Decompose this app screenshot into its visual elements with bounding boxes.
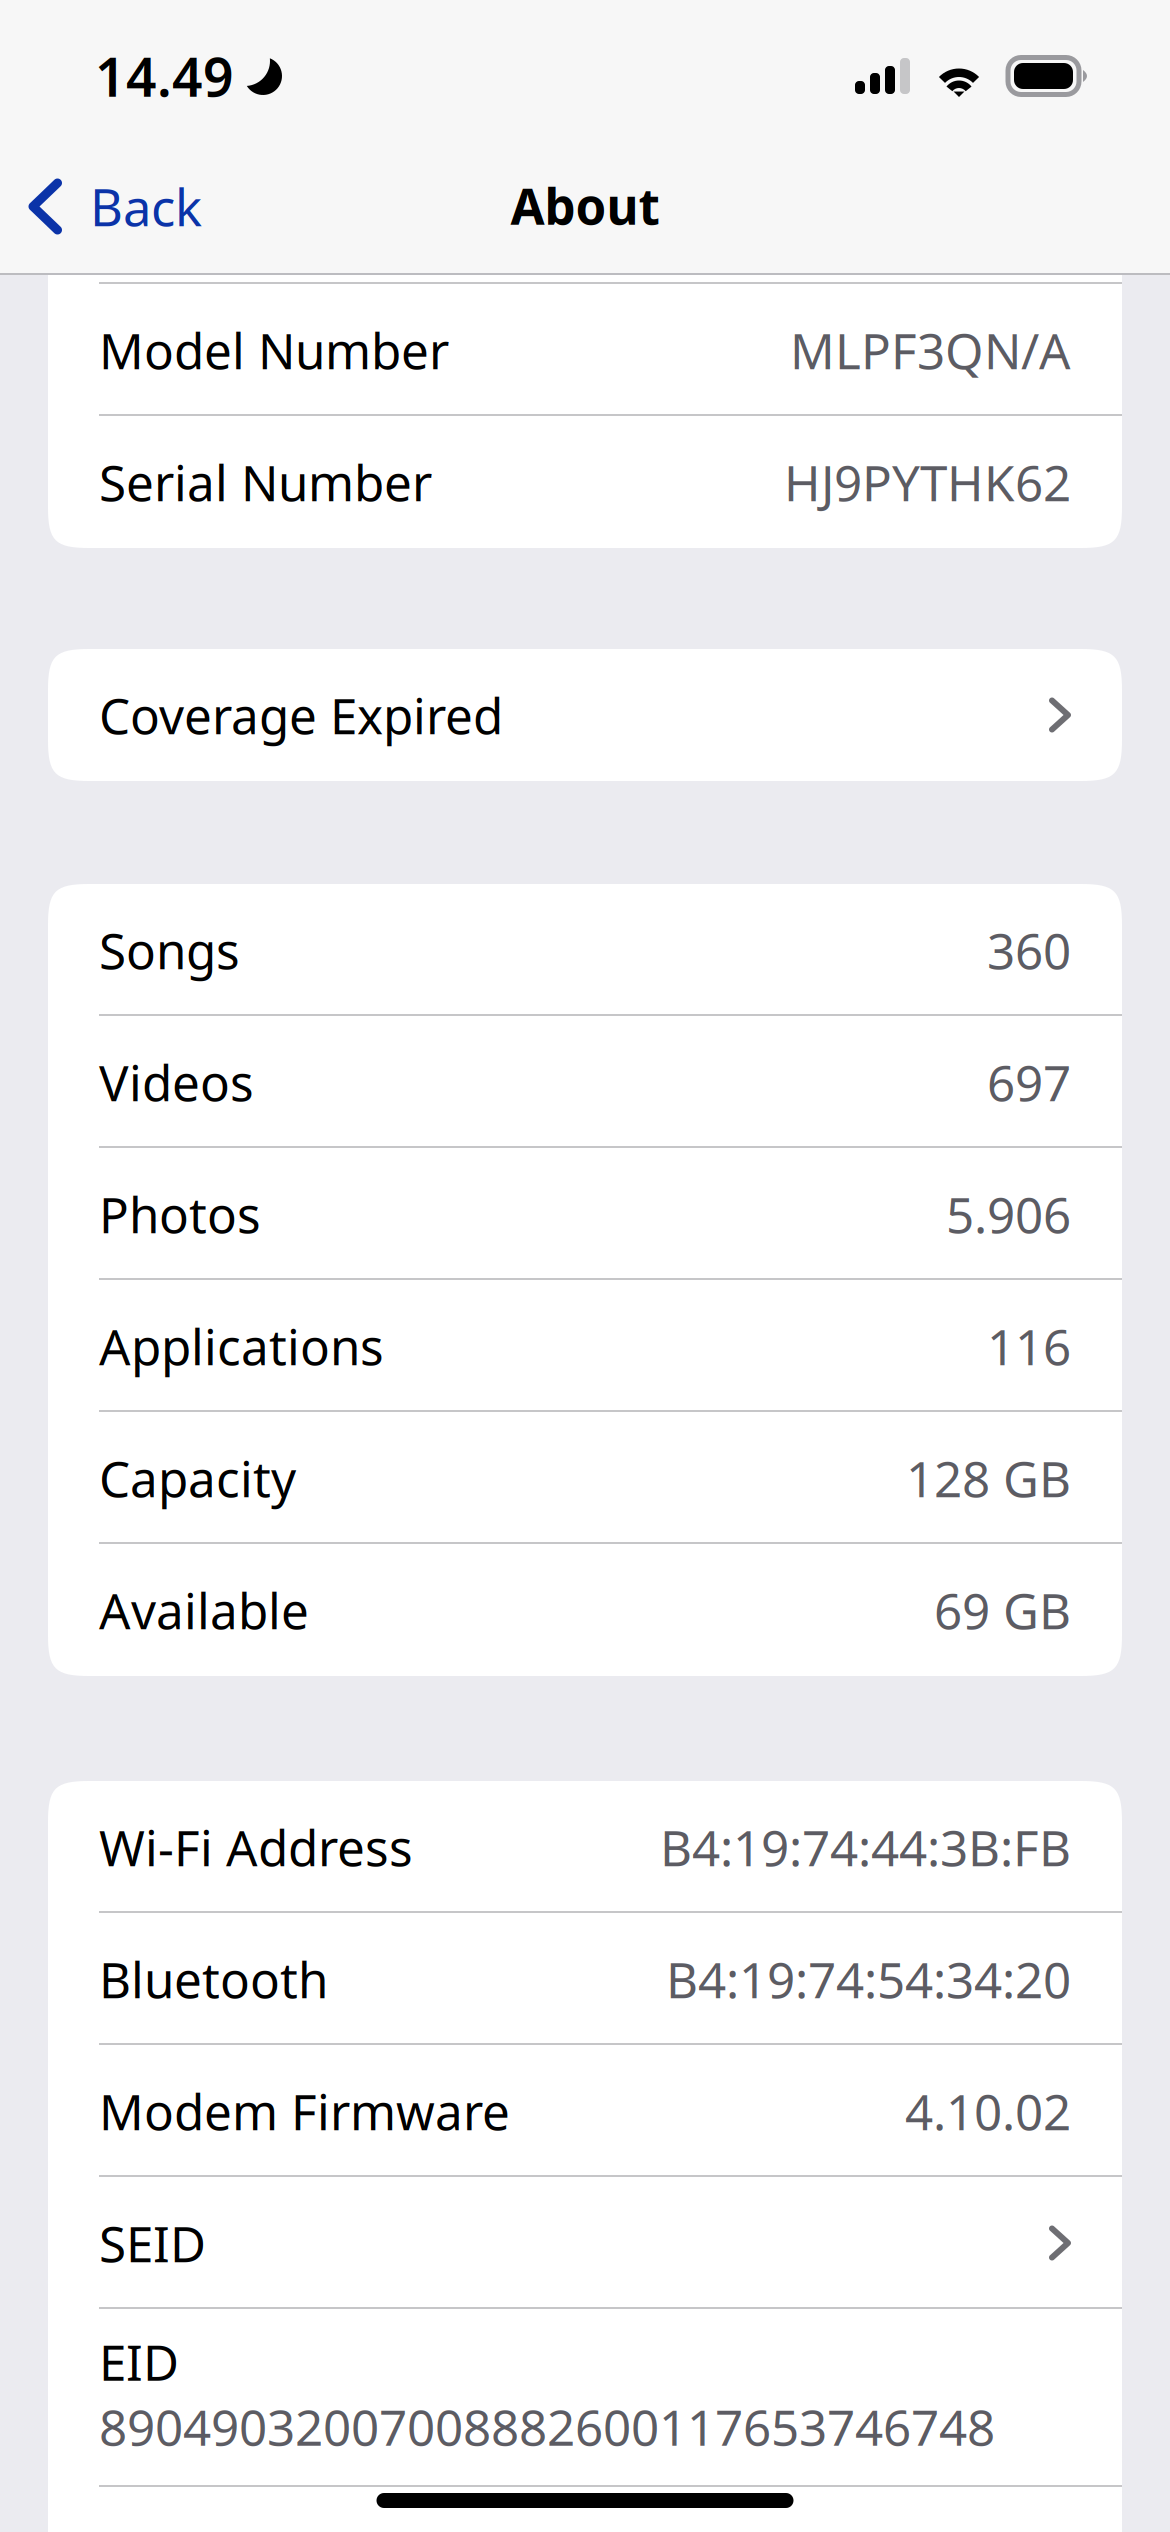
staticText: 116 — [987, 1313, 1071, 1379]
staticText: Available — [99, 1577, 309, 1643]
button[interactable]: SEID — [48, 2177, 1122, 2309]
staticText: B4:19:74:44:3B:FB — [660, 1814, 1071, 1880]
staticText: 4.10.02 — [905, 2078, 1071, 2144]
staticText: Songs — [99, 917, 240, 983]
button[interactable]: Applications — [48, 1280, 1122, 1412]
staticText: Capacity — [99, 1445, 296, 1511]
staticText: 14.49 — [95, 41, 234, 111]
staticText: B4:19:74:54:34:20 — [666, 1946, 1071, 2012]
staticText: Applications — [99, 1313, 384, 1379]
staticText: Videos — [99, 1049, 254, 1115]
staticText: 69 GB — [934, 1577, 1071, 1643]
button[interactable]: Available — [48, 1544, 1122, 1676]
button[interactable]: Capacity — [48, 1412, 1122, 1544]
button[interactable]: Songs — [48, 884, 1122, 1016]
button[interactable]: Modem Firmware — [48, 2045, 1122, 2177]
staticText: Bluetooth — [99, 1946, 328, 2012]
staticText: Model Name — [99, 185, 397, 251]
staticText: Wi-Fi Address — [99, 1814, 413, 1880]
button[interactable]: Serial Number — [48, 416, 1122, 548]
button[interactable]: IMEI — [48, 2487, 1122, 2532]
staticText: EID — [99, 2329, 179, 2394]
button[interactable]: Back — [0, 152, 224, 273]
staticText: Modem Firmware — [99, 2078, 510, 2144]
staticText: 89049032007008882600117653746748 — [99, 2394, 995, 2459]
staticText: Serial Number — [99, 449, 432, 515]
staticText: Back — [90, 173, 202, 240]
staticText: 697 — [987, 1049, 1071, 1115]
staticText: Coverage Expired — [99, 682, 503, 748]
button[interactable]: EID — [48, 2309, 1122, 2487]
button[interactable]: Model Number — [48, 284, 1122, 416]
button[interactable]: Bluetooth — [48, 1913, 1122, 2045]
button[interactable]: Videos — [48, 1016, 1122, 1148]
staticText: MLPF3QN/A — [790, 317, 1071, 383]
staticText: HJ9PYTHK62 — [784, 449, 1071, 515]
button[interactable]: Wi-Fi Address — [48, 1781, 1122, 1913]
staticText: SEID — [99, 2210, 206, 2276]
staticText: 5.906 — [946, 1181, 1071, 1247]
button[interactable]: Photos — [48, 1148, 1122, 1280]
staticText: Model Number — [99, 317, 449, 383]
staticText: 360 — [987, 917, 1071, 983]
button[interactable]: Model Name — [48, 152, 1122, 284]
staticText: About — [510, 173, 659, 238]
staticText: Photos — [99, 1181, 261, 1247]
button[interactable]: Coverage Expired — [48, 649, 1122, 781]
staticText: 128 GB — [906, 1445, 1071, 1511]
